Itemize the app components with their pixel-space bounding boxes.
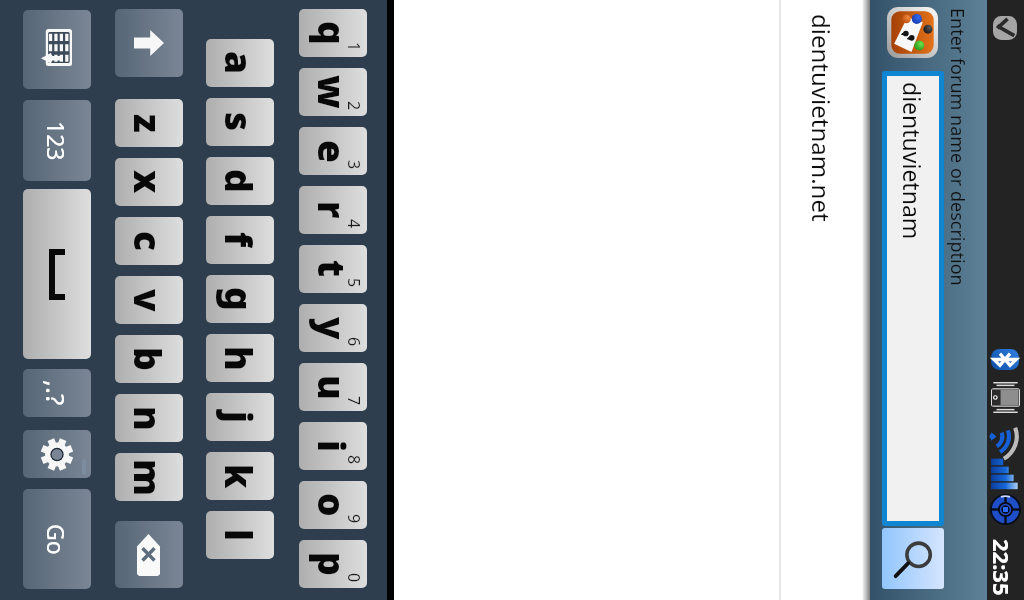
staticText: b	[124, 347, 174, 371]
staticText: h	[215, 346, 265, 371]
button[interactable]	[23, 189, 91, 359]
button[interactable]: g	[206, 275, 274, 323]
staticText: Go	[41, 524, 72, 555]
button[interactable]: j	[206, 393, 274, 441]
staticText: 1	[343, 42, 365, 52]
staticText: p	[308, 552, 358, 576]
button[interactable]: v	[115, 276, 183, 324]
staticText: 4	[343, 219, 365, 229]
button[interactable]: y	[299, 304, 367, 352]
staticText: g	[215, 287, 265, 311]
staticText: 9	[343, 514, 365, 524]
button[interactable]: k	[206, 452, 274, 500]
staticText: 5	[343, 278, 365, 288]
staticText: o	[308, 493, 358, 517]
staticText: f	[215, 232, 265, 248]
staticText: 8	[343, 455, 365, 465]
button[interactable]: n	[115, 394, 183, 442]
staticText: z	[124, 114, 174, 133]
button[interactable]: d	[206, 157, 274, 205]
button[interactable]: Tapatalk	[887, 7, 938, 58]
staticText: x	[124, 170, 174, 194]
staticText: 3	[343, 160, 365, 170]
button[interactable]	[23, 10, 91, 89]
staticText: 2	[343, 101, 365, 111]
staticText: l	[215, 529, 265, 541]
button[interactable]: b	[115, 335, 183, 383]
button[interactable]: s	[206, 98, 274, 146]
button[interactable]	[115, 521, 183, 588]
staticText: w	[308, 75, 358, 109]
button[interactable]: Back	[987, 4, 1024, 52]
button[interactable]	[23, 430, 91, 478]
button[interactable]: r	[299, 186, 367, 234]
button[interactable]: t	[299, 245, 367, 293]
button[interactable]: f	[206, 216, 274, 264]
button[interactable]: Search	[882, 528, 944, 589]
button[interactable]: h	[206, 334, 274, 382]
staticText: y	[308, 317, 358, 340]
staticText: 6	[343, 337, 365, 347]
button[interactable]: c	[115, 217, 183, 265]
button[interactable]: q	[299, 9, 367, 57]
button[interactable]: e	[299, 127, 367, 175]
button[interactable]: ,.?	[23, 369, 91, 417]
staticText: s	[215, 112, 265, 132]
staticText: j	[215, 411, 265, 423]
staticText: e	[308, 140, 358, 163]
button[interactable]: 123	[23, 100, 91, 181]
staticText: r	[308, 201, 358, 219]
button[interactable]: Go	[23, 489, 91, 589]
staticText: n	[124, 406, 174, 431]
button[interactable]: dientuvietnam	[887, 76, 939, 521]
staticText: c	[124, 231, 174, 251]
staticText: dientuvietnam	[897, 82, 928, 240]
staticText: 0	[343, 573, 365, 583]
staticText: a	[215, 51, 265, 75]
staticText: t	[308, 260, 358, 278]
button[interactable]: p	[299, 540, 367, 588]
button[interactable]: m	[115, 453, 183, 501]
button[interactable]	[115, 9, 183, 77]
button[interactable]: l	[206, 511, 274, 559]
staticText: v	[124, 289, 174, 312]
staticText: 123	[41, 121, 72, 161]
staticText: 7	[343, 396, 365, 406]
button[interactable]: u	[299, 363, 367, 411]
staticText: 22:35	[987, 539, 1017, 596]
staticText: q	[308, 21, 358, 45]
staticText: k	[215, 464, 265, 489]
button[interactable]: a	[206, 39, 274, 87]
staticText: ,.?	[39, 380, 74, 406]
staticText: dientuvietnam.net	[805, 14, 838, 222]
staticText: Enter forum name or description	[945, 8, 970, 286]
button[interactable]: x	[115, 158, 183, 206]
button[interactable]: o	[299, 481, 367, 529]
staticText: m	[124, 459, 174, 496]
button[interactable]: i	[299, 422, 367, 470]
staticText: i	[308, 440, 358, 453]
staticText: u	[308, 375, 358, 400]
staticText: d	[215, 169, 265, 193]
button[interactable]: z	[115, 99, 183, 147]
button[interactable]: w	[299, 68, 367, 116]
